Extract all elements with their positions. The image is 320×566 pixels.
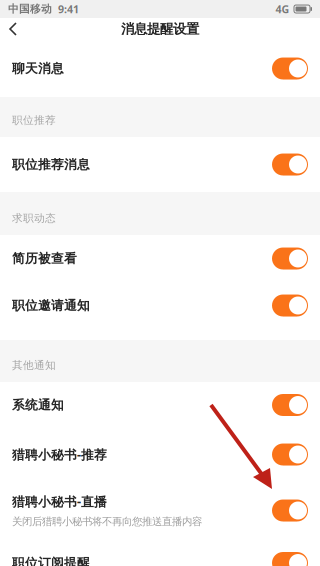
staticText: 中国移动 xyxy=(8,2,52,16)
staticText: 职位推荐消息 xyxy=(12,156,90,172)
staticText: 猎聘小秘书-推荐 xyxy=(12,446,107,463)
staticText: 职位邀请通知 xyxy=(12,297,90,313)
button[interactable]: 简历被查看 xyxy=(0,235,320,282)
button[interactable]: 猎聘小秘书-推荐 xyxy=(0,428,320,481)
button[interactable]: 聊天消息 xyxy=(0,40,320,97)
staticText: 聊天消息 xyxy=(12,60,64,76)
staticText: 9:41 xyxy=(52,2,79,16)
staticText: 简历被查看 xyxy=(12,250,77,266)
staticText: 求职动态 xyxy=(12,212,56,225)
staticText: 关闭后猎聘小秘书将不再向您推送直播内容 xyxy=(12,515,202,528)
staticText: 猎聘小秘书-直播 xyxy=(12,493,107,510)
staticText: 职位订阅提醒 xyxy=(12,555,90,566)
staticText: 消息提醒设置 xyxy=(121,21,199,37)
staticText: 4G xyxy=(275,2,289,16)
staticText: 系统通知 xyxy=(12,397,64,413)
staticText: 其他通知 xyxy=(12,359,56,372)
button[interactable]: Back xyxy=(0,21,28,37)
button[interactable]: 职位邀请通知 xyxy=(0,282,320,329)
button[interactable]: 职位推荐消息 xyxy=(0,137,320,192)
staticText: 职位推荐 xyxy=(12,114,56,127)
button[interactable]: 系统通知 xyxy=(0,382,320,428)
button[interactable]: 猎聘小秘书-直播 xyxy=(0,481,320,540)
button[interactable]: 职位订阅提醒 xyxy=(0,540,320,566)
